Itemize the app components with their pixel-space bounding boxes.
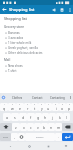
button[interactable]: x <box>20 123 27 131</box>
staticText: 4 <box>27 103 29 106</box>
button[interactable]: 5 <box>31 103 38 111</box>
staticText: T-shirt <box>8 69 17 73</box>
button[interactable]: New shoes <box>5 64 70 68</box>
staticText: h <box>44 115 47 120</box>
button[interactable]: , <box>11 133 18 141</box>
staticText: Contact <box>32 96 43 100</box>
staticText: s <box>14 115 16 120</box>
staticText: q <box>3 106 6 111</box>
button[interactable]: 8 <box>52 103 59 111</box>
button[interactable]: Share <box>50 5 58 14</box>
staticText: n <box>50 125 53 130</box>
staticText: l <box>66 115 67 120</box>
staticText: 3 avocados <box>8 36 24 40</box>
button[interactable]: 2 <box>8 103 16 111</box>
staticText: Grocery store <box>4 25 25 29</box>
button[interactable]: More options <box>66 5 73 14</box>
staticText: ?123 <box>3 136 8 139</box>
staticText: k <box>59 115 61 120</box>
button[interactable]: 6 <box>38 103 45 111</box>
button[interactable]: k <box>56 113 63 121</box>
staticText: u <box>47 106 50 111</box>
button[interactable]: Recent apps <box>39 142 58 150</box>
staticText: v <box>37 125 39 130</box>
button[interactable]: d <box>19 113 27 121</box>
button[interactable]: Greek yoghurt, vanilla <box>5 46 70 50</box>
button[interactable]: 4 <box>24 103 31 111</box>
button[interactable]: 3 avocados <box>5 36 70 40</box>
staticText: Shopping list <box>4 16 27 21</box>
staticText: a <box>6 115 8 120</box>
staticText: Greek yoghurt, vanilla <box>8 46 38 50</box>
button[interactable]: m <box>55 123 62 131</box>
button[interactable]: Google search <box>0 93 7 102</box>
staticText: 2 <box>12 103 14 106</box>
button[interactable]: Enter <box>62 133 73 141</box>
staticText: x <box>23 125 25 130</box>
button[interactable]: b <box>41 123 48 131</box>
button[interactable]: Contacting <box>47 93 67 102</box>
button[interactable]: v <box>34 123 41 131</box>
button[interactable]: Clothes <box>7 93 27 102</box>
button[interactable]: English <box>25 133 55 141</box>
staticText: , <box>14 135 15 139</box>
button[interactable]: j <box>49 113 56 121</box>
staticText: r <box>27 106 29 111</box>
staticText: Other delicious delicacies <box>8 51 43 55</box>
staticText: m <box>57 125 61 130</box>
button[interactable]: Contact <box>27 93 47 102</box>
staticText: i <box>56 106 57 111</box>
staticText: d <box>22 115 25 120</box>
button[interactable]: h <box>42 113 49 121</box>
staticText: Bananas <box>8 31 20 35</box>
staticText: . <box>58 135 59 139</box>
button[interactable]: Emoji <box>18 133 25 141</box>
button[interactable]: Bananas <box>5 31 70 35</box>
button[interactable]: g <box>35 113 42 121</box>
button[interactable]: Switch keyboard <box>58 142 73 150</box>
staticText: 7 <box>48 103 50 106</box>
button[interactable]: 1 <box>0 103 8 111</box>
staticText: j <box>52 115 53 120</box>
button[interactable]: 7 <box>45 103 52 111</box>
button[interactable]: 9 <box>59 103 66 111</box>
staticText: t <box>34 106 36 111</box>
staticText: c <box>30 125 32 130</box>
button[interactable]: Shift <box>0 123 12 131</box>
button[interactable]: 0 <box>66 103 73 111</box>
staticText: o <box>61 106 64 111</box>
button[interactable]: T-shirt <box>5 69 70 73</box>
staticText: 1 liter whole milk <box>8 41 32 45</box>
button[interactable]: . <box>55 133 62 141</box>
button[interactable]: Back <box>0 5 9 14</box>
staticText: 1 <box>4 103 6 106</box>
staticText: y <box>41 106 43 111</box>
button[interactable]: Backspace <box>62 123 73 131</box>
button[interactable]: 3 <box>16 103 24 111</box>
button[interactable]: l <box>63 113 70 121</box>
staticText: New shoes <box>8 64 23 68</box>
button[interactable]: 1 liter whole milk <box>5 41 70 45</box>
staticText: Shopping list <box>9 7 50 13</box>
staticText: z <box>15 125 17 130</box>
button[interactable]: ?123 <box>0 133 11 141</box>
staticText: e <box>19 106 21 111</box>
staticText: b <box>43 125 46 130</box>
staticText: English <box>36 136 44 139</box>
button[interactable]: f <box>27 113 35 121</box>
button[interactable]: Archive <box>58 5 66 14</box>
button[interactable]: a <box>3 113 11 121</box>
button[interactable]: Keyboard options <box>67 93 73 102</box>
button[interactable]: Back <box>0 142 20 150</box>
staticText: 5 <box>34 103 36 106</box>
staticText: f <box>30 115 32 120</box>
button[interactable]: Home <box>20 142 39 150</box>
button[interactable]: z <box>12 123 20 131</box>
staticText: p <box>68 106 71 111</box>
button[interactable]: s <box>11 113 19 121</box>
staticText: 0 <box>69 103 71 106</box>
button[interactable]: c <box>27 123 34 131</box>
staticText: g <box>37 115 40 120</box>
button[interactable]: Other delicious delicacies <box>5 51 70 55</box>
button[interactable]: n <box>48 123 55 131</box>
